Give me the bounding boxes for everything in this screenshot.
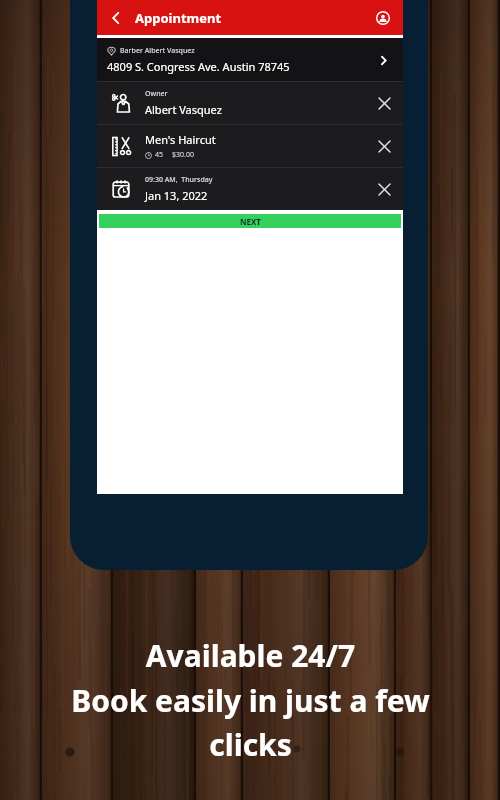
button[interactable]: Owner bbox=[97, 82, 403, 124]
button[interactable]: Back bbox=[103, 5, 129, 31]
button[interactable]: 09:30 AM, Thursday bbox=[97, 168, 403, 210]
button[interactable]: Open location bbox=[373, 50, 393, 70]
staticText: Jan 13, 2022 bbox=[145, 188, 208, 203]
button[interactable]: Remove service bbox=[373, 135, 395, 157]
staticText: 09:30 AM, Thursday bbox=[145, 175, 213, 185]
staticText: Available 24/7 Book easily in just a few… bbox=[71, 635, 430, 764]
button[interactable]: Men's Haircut bbox=[97, 125, 403, 167]
staticText: NEXT bbox=[240, 216, 261, 227]
button[interactable]: Barber Albert Vasquez bbox=[97, 38, 403, 81]
button[interactable]: Account bbox=[370, 5, 396, 31]
button[interactable]: Remove date bbox=[373, 178, 395, 200]
staticText: Albert Vasquez bbox=[145, 102, 222, 117]
staticText: $30.00 bbox=[172, 150, 194, 160]
staticText: Owner bbox=[145, 89, 168, 99]
staticText: 4809 S. Congress Ave. Austin 78745 bbox=[107, 59, 290, 74]
button[interactable]: NEXT bbox=[99, 214, 401, 228]
staticText: Men's Haircut bbox=[145, 132, 216, 147]
staticText: Barber Albert Vasquez bbox=[120, 46, 195, 56]
staticText: 45 bbox=[155, 150, 164, 160]
staticText: Appointment bbox=[135, 9, 222, 27]
button[interactable]: Remove owner bbox=[373, 92, 395, 114]
